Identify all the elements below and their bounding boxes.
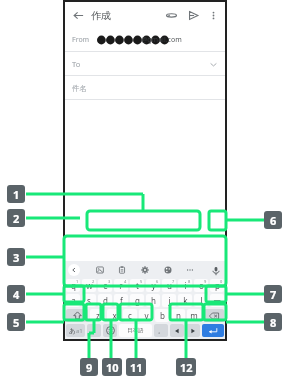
- button[interactable]: j: [162, 294, 176, 307]
- button[interactable]: c: [123, 309, 137, 322]
- button[interactable]: テーマ: [161, 263, 175, 277]
- staticText: z: [96, 310, 100, 321]
- staticText: 5: [140, 279, 143, 284]
- staticText: b: [160, 310, 165, 321]
- staticText: 9: [86, 360, 93, 375]
- button[interactable]: h: [146, 294, 160, 307]
- staticText: 6: [156, 279, 159, 284]
- staticText: g: [135, 295, 140, 306]
- button[interactable]: q: [66, 279, 80, 292]
- staticText: 7: [172, 279, 175, 284]
- staticText: d: [103, 295, 108, 306]
- staticText: 作成: [91, 9, 111, 22]
- button[interactable]: ー: [210, 294, 224, 307]
- staticText: e: [103, 280, 108, 291]
- other: Backspace: [203, 309, 224, 322]
- staticText: a: [71, 295, 76, 306]
- staticText: o: [199, 280, 204, 291]
- button[interactable]: 件名: [65, 76, 225, 100]
- button[interactable]: n: [171, 309, 185, 322]
- button[interactable]: v: [139, 309, 153, 322]
- staticText: 。: [158, 327, 164, 335]
- button[interactable]: w: [82, 279, 96, 292]
- staticText: r: [119, 280, 123, 291]
- staticText: i: [184, 280, 187, 291]
- staticText: a1: [76, 327, 83, 335]
- staticText: l: [200, 295, 203, 306]
- button[interactable]: 、: [87, 324, 101, 337]
- button[interactable]: 絵文字: [103, 324, 117, 337]
- button[interactable]: その他: [183, 263, 197, 277]
- button[interactable]: y: [146, 279, 160, 292]
- button[interactable]: r: [114, 279, 128, 292]
- button[interactable]: 添付: [164, 8, 178, 22]
- button[interactable]: x: [107, 309, 121, 322]
- button[interactable]: Backspace: [203, 309, 224, 322]
- staticText: 4: [13, 287, 20, 302]
- button[interactable]: 送信: [186, 8, 200, 22]
- button[interactable]: 日本語: [119, 324, 152, 337]
- button[interactable]: 戻る: [71, 8, 85, 22]
- button[interactable]: From: [65, 28, 225, 52]
- button[interactable]: To: [65, 52, 225, 76]
- staticText: To: [72, 59, 81, 69]
- staticText: k: [183, 295, 188, 306]
- staticText: 1: [76, 279, 79, 284]
- button[interactable]: その他のオプション: [207, 9, 219, 21]
- button[interactable]: Enter: [202, 324, 224, 337]
- button[interactable]: k: [178, 294, 192, 307]
- button[interactable]: 展開: [68, 264, 80, 276]
- staticText: t: [136, 280, 139, 291]
- staticText: s: [87, 295, 91, 306]
- staticText: 件名: [72, 84, 87, 93]
- staticText: 10: [106, 360, 119, 375]
- staticText: h: [151, 295, 156, 306]
- button[interactable]: 設定: [138, 263, 152, 277]
- button[interactable]: o: [194, 279, 208, 292]
- staticText: 日本語: [127, 327, 144, 334]
- button[interactable]: あ: [66, 324, 85, 337]
- button[interactable]: 右へ移動: [186, 324, 200, 337]
- button[interactable]: g: [130, 294, 144, 307]
- staticText: p: [215, 280, 220, 291]
- staticText: ー: [213, 296, 221, 306]
- button[interactable]: e: [98, 279, 112, 292]
- button[interactable]: l: [194, 294, 208, 307]
- staticText: f: [120, 295, 123, 306]
- staticText: q: [71, 280, 76, 291]
- button[interactable]: d: [98, 294, 112, 307]
- staticText: x: [112, 310, 117, 321]
- staticText: v: [144, 310, 149, 321]
- staticText: m: [190, 310, 198, 321]
- staticText: 8: [188, 279, 191, 284]
- button[interactable]: i: [178, 279, 192, 292]
- button[interactable]: a: [66, 294, 80, 307]
- button[interactable]: 左へ移動: [170, 324, 184, 337]
- button[interactable]: 音声入力: [209, 264, 222, 277]
- button[interactable]: 。: [154, 324, 168, 337]
- other: Enter: [202, 324, 224, 337]
- staticText: 5: [13, 315, 20, 330]
- staticText: n: [176, 310, 181, 321]
- button[interactable]: s: [82, 294, 96, 307]
- button[interactable]: t: [130, 279, 144, 292]
- button[interactable]: p: [210, 279, 224, 292]
- staticText: u: [167, 280, 172, 291]
- button[interactable]: Shift: [66, 309, 88, 322]
- button[interactable]: z: [90, 309, 105, 322]
- staticText: j: [168, 295, 171, 306]
- staticText: 6: [270, 213, 277, 228]
- button[interactable]: b: [155, 309, 169, 322]
- button[interactable]: f: [114, 294, 128, 307]
- button[interactable]: クリップボード: [115, 263, 129, 277]
- staticText: w: [86, 280, 93, 291]
- button[interactable]: m: [187, 309, 201, 322]
- button[interactable]: 画像: [93, 263, 107, 277]
- staticText: 3: [108, 279, 111, 284]
- staticText: 0: [220, 279, 223, 284]
- button[interactable]: u: [162, 279, 176, 292]
- staticText: 8: [270, 315, 277, 330]
- staticText: c: [128, 310, 132, 321]
- other: Shift: [66, 309, 88, 322]
- staticText: 4: [124, 279, 127, 284]
